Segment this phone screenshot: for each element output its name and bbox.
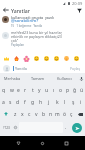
staticText: s xyxy=(9,99,12,106)
staticText: m xyxy=(55,111,60,118)
staticText: b xyxy=(42,111,46,118)
button[interactable]: f xyxy=(21,96,29,108)
staticText: c xyxy=(28,111,31,118)
staticText: g xyxy=(31,99,35,106)
staticText: w xyxy=(10,87,14,94)
button[interactable]: . xyxy=(63,122,69,133)
button[interactable]: n xyxy=(47,108,54,120)
button[interactable]: m xyxy=(54,108,61,120)
staticText: Yanıtlar xyxy=(11,7,30,14)
staticText: k xyxy=(56,99,59,106)
button[interactable]: Recents xyxy=(61,138,72,149)
button[interactable]: ğ xyxy=(71,84,78,96)
button[interactable]: Happy reaction xyxy=(71,54,81,63)
staticText: l xyxy=(64,99,66,106)
button[interactable]: Backspace xyxy=(75,108,85,120)
button[interactable]: Paylaş xyxy=(69,64,82,73)
button[interactable]: s xyxy=(7,96,14,108)
button[interactable]: p xyxy=(64,84,71,96)
button[interactable]: Blossom reaction xyxy=(21,54,31,63)
button[interactable]: i xyxy=(77,96,85,108)
button[interactable]: j xyxy=(45,96,53,108)
button[interactable]: ö xyxy=(61,108,68,120)
staticText: i xyxy=(80,99,82,106)
button[interactable]: l xyxy=(61,96,69,108)
button[interactable]: Grin reaction xyxy=(51,54,61,63)
staticText: q xyxy=(2,87,6,94)
staticText: ?123 xyxy=(3,126,10,130)
button[interactable]: Crown reaction xyxy=(1,54,11,63)
button[interactable]: c xyxy=(26,108,33,120)
button[interactable]: Tamam xyxy=(25,73,51,84)
button[interactable]: o xyxy=(57,84,64,96)
staticText: h xyxy=(39,99,43,106)
button[interactable]: x xyxy=(19,108,26,120)
button[interactable]: Smile reaction xyxy=(41,54,51,63)
button[interactable]: ı xyxy=(50,84,57,96)
button[interactable]: u xyxy=(43,84,50,96)
staticText: e xyxy=(17,87,20,94)
staticText: ı xyxy=(53,87,55,94)
staticText: a xyxy=(2,99,5,106)
button[interactable]: ç xyxy=(68,108,75,120)
staticText: v xyxy=(35,111,38,118)
button[interactable]: e xyxy=(15,84,22,96)
button[interactable]: Voice input xyxy=(77,73,85,84)
button[interactable]: Back xyxy=(13,138,24,149)
staticText: kullanıcıadı grupta yazdı xyxy=(11,15,54,20)
staticText: mehfed23 bunu bir yıl hazırlar, etkinlik… xyxy=(11,30,63,43)
button[interactable]: ü xyxy=(78,84,85,96)
button[interactable]: Fire reaction xyxy=(11,54,21,63)
button[interactable]: Kullanıcı xyxy=(51,73,77,84)
staticText: . xyxy=(65,124,67,131)
staticText: u xyxy=(45,87,49,94)
button[interactable]: r xyxy=(22,84,29,96)
staticText: Yanıtla xyxy=(15,66,27,71)
button[interactable]: ?123 xyxy=(0,122,12,133)
button[interactable]: v xyxy=(33,108,40,120)
staticText: ş xyxy=(72,99,75,106)
staticText: ü xyxy=(80,87,84,94)
button[interactable]: y xyxy=(36,84,43,96)
button[interactable]: Laugh reaction xyxy=(31,54,41,63)
button[interactable]: Filter xyxy=(74,6,85,14)
button[interactable]: ş xyxy=(69,96,77,108)
staticText: x xyxy=(21,111,24,118)
button[interactable]: Send xyxy=(72,123,82,133)
staticText: j xyxy=(48,99,50,106)
staticText: Paylaş xyxy=(70,66,81,71)
button[interactable]: b xyxy=(40,108,47,120)
staticText: Tamam xyxy=(31,76,45,81)
button[interactable]: Back xyxy=(0,6,11,14)
button[interactable]: Merhaba xyxy=(0,73,25,84)
button[interactable]: Shift xyxy=(0,108,11,120)
button[interactable]: a xyxy=(0,96,7,108)
staticText: d xyxy=(16,99,20,106)
staticText: z xyxy=(14,111,17,118)
button[interactable]: t xyxy=(29,84,36,96)
button[interactable]: q xyxy=(0,84,8,96)
staticText: t xyxy=(32,87,34,94)
staticText: p xyxy=(66,87,70,94)
button[interactable]: k xyxy=(53,96,61,108)
button[interactable]: w xyxy=(8,84,15,96)
button[interactable]: Home xyxy=(37,138,48,149)
staticText: @sorabilirim? xyxy=(11,18,39,24)
button[interactable]: d xyxy=(14,96,21,108)
button[interactable]: g xyxy=(29,96,37,108)
button[interactable]: z xyxy=(11,108,19,120)
button[interactable]: Wave reaction xyxy=(61,54,71,63)
staticText: o xyxy=(59,87,63,94)
staticText: Merhaba xyxy=(4,76,21,81)
staticText: 15 1 beğenme Yanıtla xyxy=(11,24,43,28)
button[interactable]: Emoji keyboard xyxy=(12,122,19,133)
button[interactable]: mehfed23 bunu bir yıl hazırlar, etkinlik… xyxy=(0,29,85,50)
staticText: f xyxy=(24,99,26,106)
button[interactable]: kullanıcıadı grupta yazdı xyxy=(0,14,85,29)
staticText: ö xyxy=(63,111,67,118)
button[interactable]: h xyxy=(37,96,45,108)
staticText: n xyxy=(49,111,53,118)
staticText: ç xyxy=(70,111,73,118)
staticText: 20:09 xyxy=(72,1,83,6)
